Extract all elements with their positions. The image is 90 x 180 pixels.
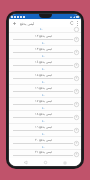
staticText: ٥٠ xyxy=(42,81,45,84)
button[interactable]: ليس يدفع ١٧ xyxy=(9,98,81,110)
staticText: ليس يدفع ١٤ xyxy=(35,60,52,64)
staticText: ٥٠ xyxy=(42,120,45,123)
button[interactable]: ليس يدفع ١٩ xyxy=(9,124,81,136)
staticText: ليس يدفع ١٢ xyxy=(35,34,52,38)
button[interactable]: Add xyxy=(11,20,17,26)
staticText: ليس يدفع ١٩ xyxy=(35,125,52,129)
staticText: ليس يدفع ١٥ xyxy=(35,73,52,77)
button[interactable]: Home xyxy=(42,159,49,166)
button[interactable]: ليس يدفع ٢٠ xyxy=(9,137,81,149)
button[interactable]: ليس يدفع ٢١ xyxy=(9,150,81,158)
button[interactable]: More options xyxy=(75,21,80,26)
button[interactable]: ليس يدفع ١٢ xyxy=(9,33,81,45)
staticText: ٥٠ xyxy=(42,68,45,71)
button[interactable]: ليس يدفع ١٥ xyxy=(9,72,81,84)
button[interactable]: ٥٠ xyxy=(9,27,81,32)
button[interactable]: Refresh xyxy=(69,20,75,26)
staticText: ليس يدفع ١٨ xyxy=(35,112,52,116)
button[interactable]: Recent apps xyxy=(61,159,68,166)
button[interactable]: ليس يدفع ١٨ xyxy=(9,111,81,123)
staticText: ليس يدفع ١٧ xyxy=(35,99,52,103)
staticText: ليس يدفع ١٣ xyxy=(35,47,52,51)
staticText: ليس يدفع ٢١ xyxy=(35,150,52,154)
staticText: ٥٠ xyxy=(42,55,45,58)
staticText: ٥٠ xyxy=(40,28,43,31)
staticText: ٥٠ xyxy=(42,94,45,97)
staticText: ليس يدفع xyxy=(20,21,35,26)
staticText: ٥٠ xyxy=(42,42,45,45)
staticText: ٥٠ xyxy=(42,146,45,149)
staticText: ليس يدفع ١٦ xyxy=(35,86,52,90)
button[interactable]: Back xyxy=(22,159,29,166)
button[interactable]: ليس يدفع ١٣ xyxy=(9,46,81,58)
staticText: ٥٠ xyxy=(42,133,45,136)
staticText: ٥٠ xyxy=(42,107,45,110)
staticText: ليس يدفع ٢٠ xyxy=(35,138,52,142)
button[interactable]: ليس يدفع ١٤ xyxy=(9,59,81,71)
button[interactable]: ليس يدفع ١٦ xyxy=(9,85,81,97)
